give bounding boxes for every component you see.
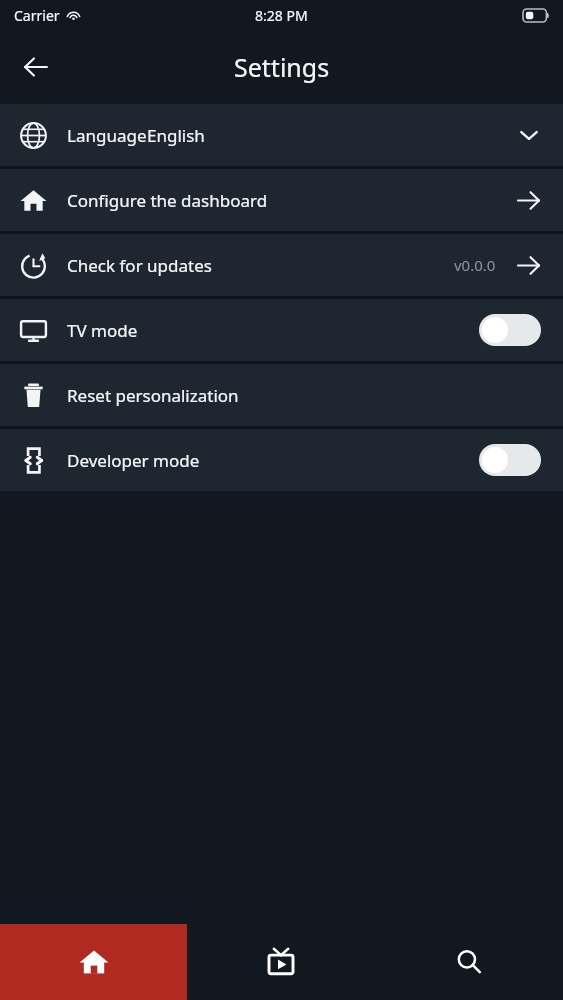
button[interactable]: Toggle — [479, 444, 541, 476]
button[interactable]: Configure the dashboard — [0, 169, 563, 231]
staticText: TV mode — [67, 319, 138, 342]
staticText: Language — [67, 124, 147, 147]
button[interactable]: Home — [0, 924, 187, 1000]
staticText: Configure the dashboard — [67, 189, 268, 212]
staticText: v0.0.0 — [454, 255, 496, 275]
button[interactable]: Live TV — [187, 924, 375, 1000]
button[interactable]: Developer mode — [0, 429, 563, 491]
staticText: Reset personalization — [67, 384, 239, 407]
button[interactable]: Reset personalization — [0, 364, 563, 426]
button[interactable]: Toggle — [479, 314, 541, 346]
staticText: Developer mode — [67, 449, 200, 472]
button[interactable]: Language — [0, 104, 563, 166]
button[interactable]: Search — [375, 924, 563, 1000]
staticText: 8:28 PM — [255, 6, 308, 25]
button[interactable]: Check for updates — [0, 234, 563, 296]
staticText: Check for updates — [67, 254, 212, 277]
button[interactable]: TV mode — [0, 299, 563, 361]
button[interactable]: Back — [10, 41, 62, 93]
staticText: English — [147, 124, 205, 147]
staticText: Carrier — [14, 6, 60, 25]
staticText: Settings — [234, 50, 330, 84]
